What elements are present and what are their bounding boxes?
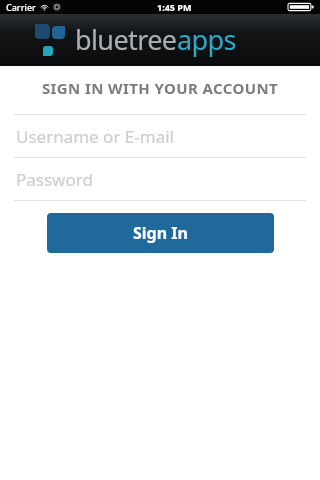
button[interactable]: Username or E-mail (0, 115, 320, 157)
button[interactable]: Password (0, 158, 320, 200)
button[interactable]: Sign In (47, 213, 274, 253)
staticText: Sign In (133, 222, 188, 244)
staticText: Username or E-mail (16, 125, 174, 148)
staticText: bluetree (75, 21, 177, 58)
staticText: apps (177, 21, 236, 58)
staticText: Password (16, 168, 93, 191)
staticText: Carrier (6, 1, 36, 13)
staticText: 1:45 PM (157, 1, 192, 13)
staticText: SIGN IN WITH YOUR ACCOUNT (0, 78, 320, 98)
